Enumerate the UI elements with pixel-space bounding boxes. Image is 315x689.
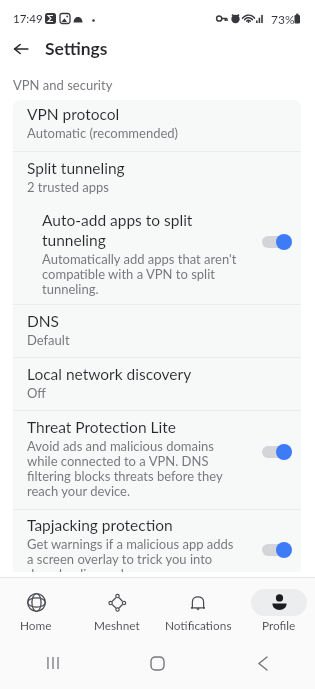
staticText: DNS: [27, 311, 60, 331]
staticText: Notifications: [165, 618, 232, 632]
button[interactable]: Tapjacking protection: [13, 510, 301, 572]
button[interactable]: Split tunneling: [13, 152, 301, 195]
button[interactable]: VPN protocol: [13, 100, 301, 141]
staticText: VPN protocol: [27, 104, 120, 124]
button[interactable]: Back: [210, 657, 315, 670]
button[interactable]: Threat Protection Lite: [13, 411, 301, 499]
button[interactable]: Meshnet: [77, 586, 157, 632]
button[interactable]: Home: [105, 657, 210, 670]
staticText: Meshnet: [94, 618, 140, 632]
staticText: Off: [27, 386, 47, 401]
staticText: Automatically add apps that aren't compa…: [42, 252, 252, 297]
staticText: Profile: [262, 618, 296, 632]
staticText: VPN and security: [13, 77, 113, 93]
staticText: Automatic (recommended): [27, 126, 179, 141]
staticText: Get warnings if a malicious app adds a s…: [27, 537, 237, 572]
button[interactable]: Home: [0, 586, 76, 632]
staticText: 2 trusted apps: [27, 180, 109, 195]
staticText: 73%: [271, 12, 295, 26]
button[interactable]: Back: [7, 35, 35, 63]
staticText: Split tunneling: [27, 158, 125, 178]
staticText: Settings: [45, 38, 108, 59]
staticText: Default: [27, 333, 70, 348]
staticText: Home: [20, 618, 52, 632]
button[interactable]: Local network discovery: [13, 358, 301, 401]
button[interactable]: DNS: [13, 305, 301, 348]
staticText: Avoid ads and malicious domains while co…: [27, 439, 237, 499]
staticText: Tapjacking protection: [27, 515, 173, 535]
button[interactable]: Auto-add apps to split tunneling: [13, 210, 301, 297]
staticText: 17:49: [13, 12, 43, 26]
staticText: Threat Protection Lite: [27, 417, 176, 437]
button[interactable]: Notifications: [158, 586, 238, 632]
button[interactable]: Profile: [239, 586, 315, 632]
staticText: Local network discovery: [27, 364, 192, 384]
button[interactable]: Recent apps: [0, 657, 105, 669]
staticText: Auto-add apps to split tunneling: [42, 210, 252, 250]
